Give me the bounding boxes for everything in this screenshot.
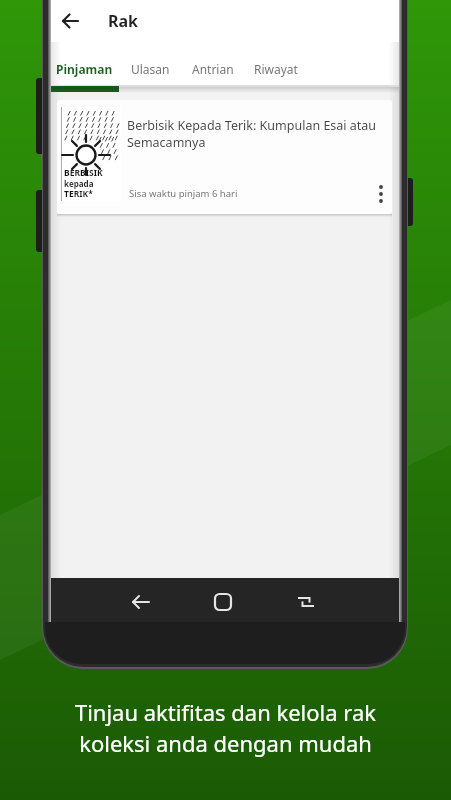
button[interactable]: BERBISIK xyxy=(57,100,392,214)
button[interactable] xyxy=(372,180,390,208)
button[interactable] xyxy=(292,588,320,616)
button[interactable]: Pinjaman xyxy=(56,61,113,77)
button[interactable]: Riwayat xyxy=(254,61,298,77)
staticText: BERBISIK xyxy=(64,167,103,179)
staticText: Rak xyxy=(108,10,139,32)
button[interactable] xyxy=(57,8,83,34)
staticText: TERIK* xyxy=(64,188,93,200)
button[interactable] xyxy=(209,588,237,616)
staticText: Sisa waktu pinjam 6 hari xyxy=(129,187,238,200)
staticText: Berbisik Kepada Terik: Kumpulan Esai ata… xyxy=(127,117,389,151)
button[interactable]: Ulasan xyxy=(131,61,170,77)
button[interactable]: Antrian xyxy=(192,61,234,77)
staticText: kepada xyxy=(64,178,94,189)
staticText: Tinjau aktifitas dan kelola rak koleksi … xyxy=(0,697,451,759)
button[interactable] xyxy=(127,588,155,616)
